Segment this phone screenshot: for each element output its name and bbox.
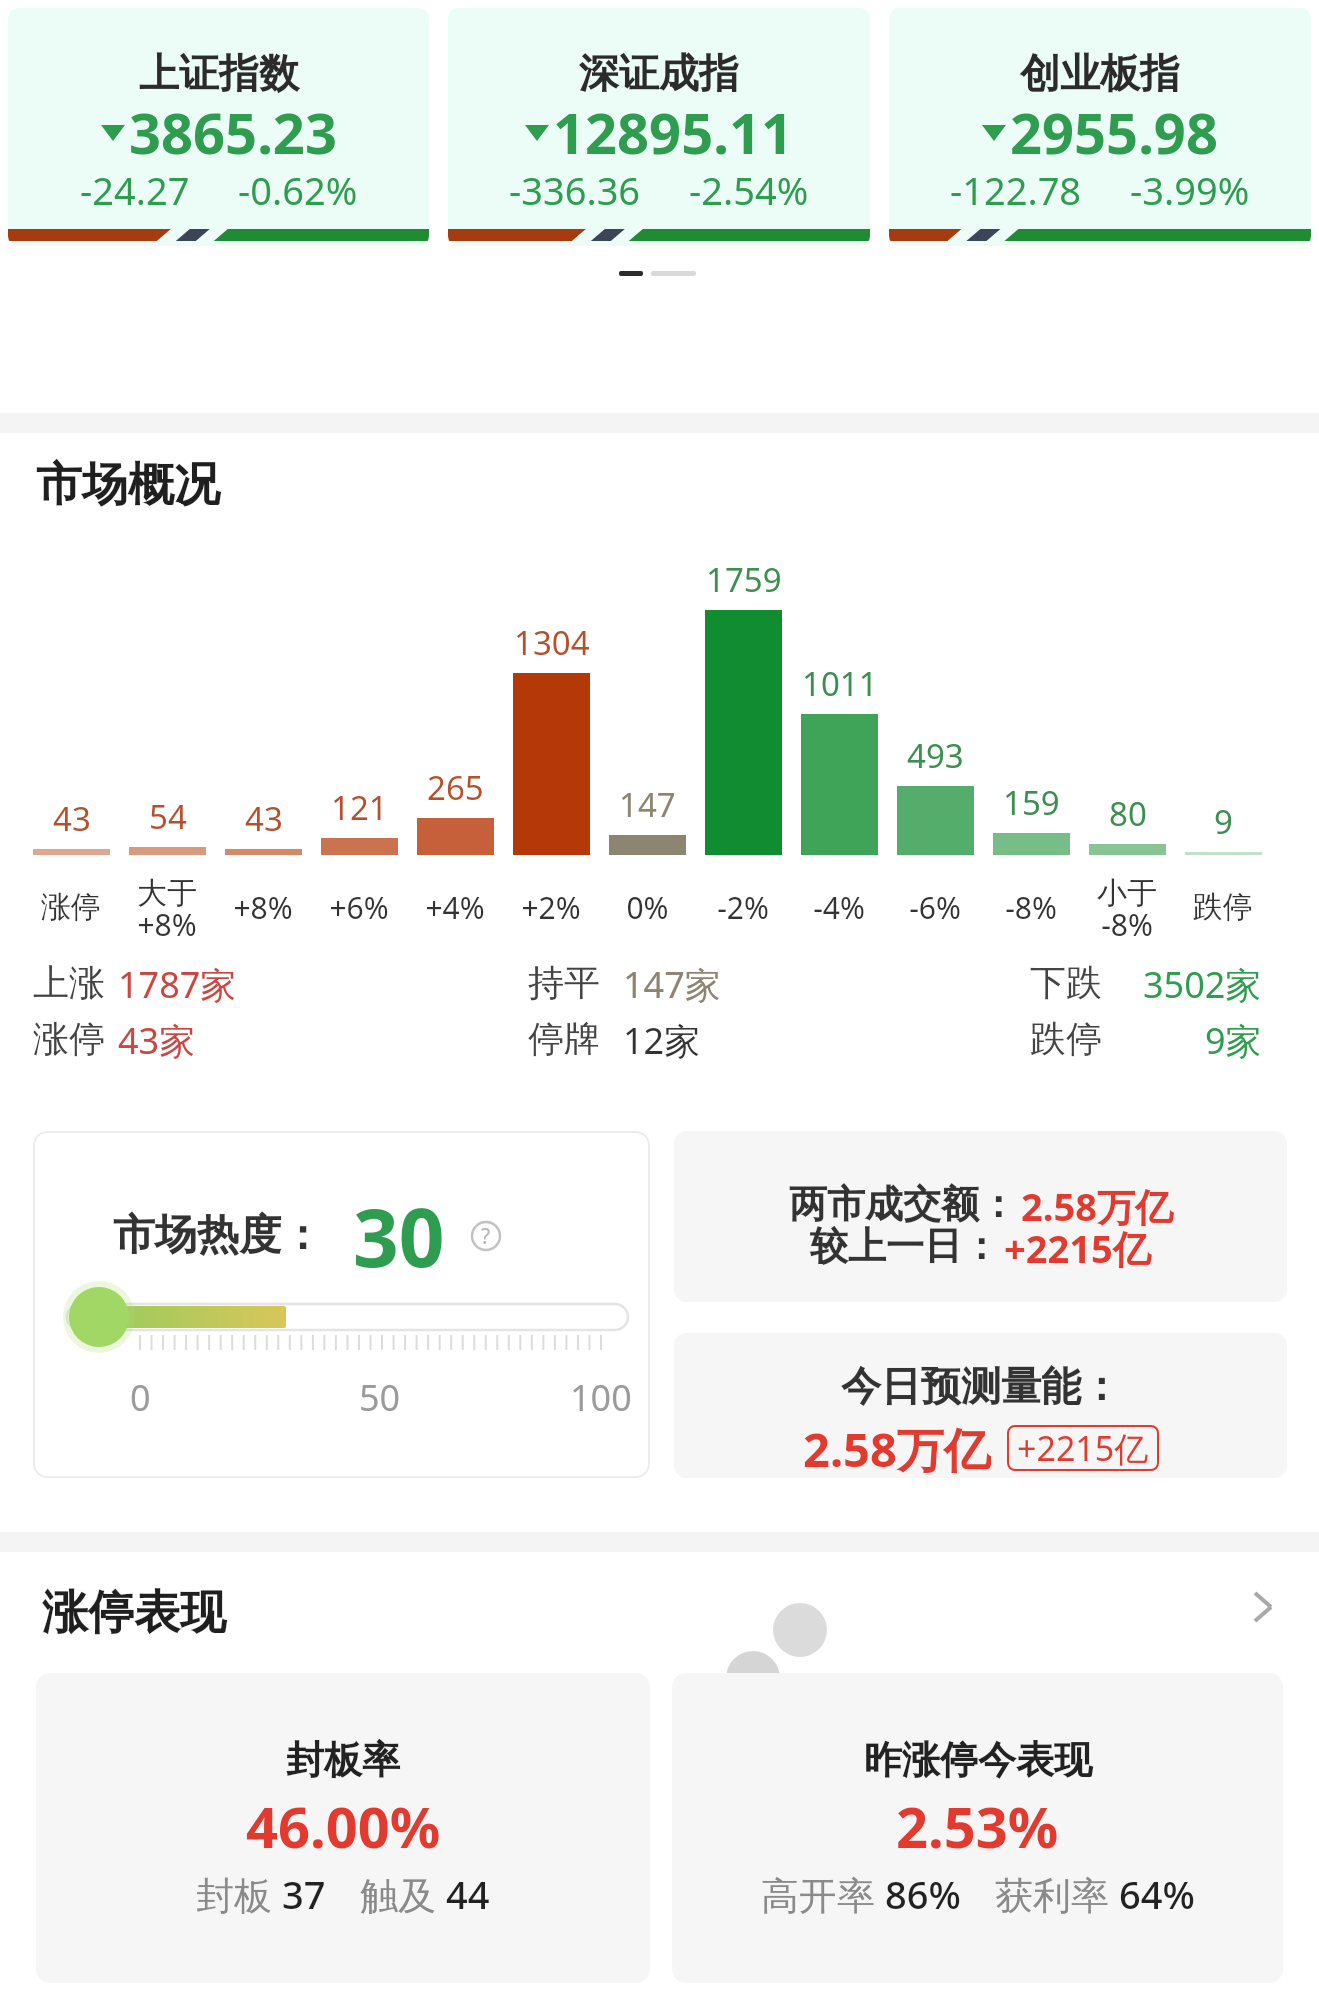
- staticText: 64%: [1119, 1868, 1195, 1920]
- staticText: 2955.98: [1010, 94, 1218, 170]
- staticText: 2.58万亿: [803, 1417, 991, 1478]
- staticText: 3865.23: [129, 94, 337, 170]
- staticText: 147家: [623, 960, 721, 1009]
- staticText: 封板: [196, 1868, 282, 1920]
- button[interactable]: 今日预测量能：: [674, 1333, 1287, 1478]
- staticText: 1787家: [118, 960, 237, 1009]
- staticText: 0: [130, 1373, 151, 1422]
- staticText: 43家: [118, 1016, 196, 1065]
- staticText: 上涨: [33, 960, 105, 1005]
- staticText: 创业板指: [1020, 48, 1180, 98]
- button[interactable]: 上证指数: [8, 8, 429, 246]
- staticText: 43: [53, 796, 91, 841]
- staticText: 深证成指: [579, 48, 739, 98]
- staticText: -122.78: [950, 164, 1082, 216]
- staticText: 跌停: [1030, 1016, 1102, 1061]
- button[interactable]: 市场热度：: [33, 1131, 650, 1478]
- staticText: 86%: [885, 1868, 961, 1920]
- button[interactable]: [1250, 1590, 1276, 1624]
- staticText: +6%: [329, 887, 389, 928]
- staticText: +2215亿: [1017, 1425, 1149, 1471]
- staticText: 493: [907, 733, 964, 778]
- button[interactable]: 封板率: [36, 1673, 650, 1983]
- staticText: 昨涨停今表现: [864, 1736, 1092, 1784]
- staticText: +2%: [521, 887, 581, 928]
- staticText: 121: [331, 785, 388, 830]
- staticText: 100: [570, 1373, 632, 1422]
- staticText: -2.54%: [689, 164, 809, 216]
- staticText: 持平: [528, 960, 600, 1005]
- staticText: 获利率: [995, 1868, 1119, 1920]
- staticText: 12家: [623, 1016, 701, 1065]
- staticText: 大于 +8%: [137, 874, 197, 940]
- staticText: 跌停: [1193, 888, 1253, 926]
- staticText: -336.36: [509, 164, 641, 216]
- button[interactable]: 创业板指: [889, 8, 1311, 246]
- staticText: 159: [1003, 780, 1060, 825]
- staticText: -8%: [1005, 887, 1057, 928]
- staticText: +4%: [425, 887, 485, 928]
- button[interactable]: 两市成交额：: [674, 1131, 1287, 1302]
- staticText: 30: [353, 1181, 445, 1290]
- staticText: 市场热度：: [113, 1209, 323, 1262]
- staticText: 265: [427, 765, 484, 810]
- staticText: 9: [1214, 799, 1233, 844]
- staticText: 涨停: [33, 1016, 105, 1061]
- staticText: -24.27: [80, 164, 190, 216]
- staticText: 封板率: [286, 1736, 400, 1784]
- staticText: 下跌: [1030, 960, 1102, 1005]
- staticText: 两市成交额：: [789, 1180, 1017, 1228]
- staticText: -4%: [813, 887, 865, 928]
- staticText: 46.00%: [246, 1788, 441, 1864]
- staticText: -2%: [717, 887, 769, 928]
- staticText: +8%: [233, 887, 293, 928]
- staticText: 2.58万亿: [1021, 1180, 1173, 1232]
- staticText: +2215亿: [1004, 1222, 1151, 1274]
- staticText: ?: [481, 1222, 491, 1251]
- staticText: 涨停表现: [42, 1584, 226, 1642]
- staticText: 43: [245, 796, 283, 841]
- staticText: -6%: [909, 887, 961, 928]
- staticText: 3502家: [1143, 960, 1262, 1009]
- button[interactable]: 昨涨停今表现: [672, 1673, 1283, 1983]
- button[interactable]: 深证成指: [448, 8, 870, 246]
- staticText: 2.53%: [896, 1788, 1059, 1864]
- staticText: 9家: [1205, 1016, 1262, 1065]
- staticText: 12895.11: [553, 94, 793, 170]
- staticText: 44: [446, 1868, 490, 1920]
- staticText: 小于 -8%: [1097, 874, 1157, 940]
- staticText: 涨停: [41, 888, 101, 926]
- staticText: 上证指数: [139, 48, 299, 98]
- staticText: 80: [1109, 791, 1147, 836]
- staticText: 高开率: [761, 1868, 885, 1920]
- staticText: 今日预测量能：: [841, 1361, 1121, 1411]
- staticText: -3.99%: [1130, 164, 1250, 216]
- staticText: 0%: [626, 887, 669, 928]
- staticText: -0.62%: [238, 164, 358, 216]
- staticText: 147: [619, 782, 676, 827]
- staticText: 停牌: [528, 1016, 600, 1061]
- staticText: 较上一日：: [810, 1222, 1000, 1270]
- staticText: 市场概况: [36, 456, 220, 514]
- staticText: 1304: [514, 620, 590, 665]
- staticText: 54: [149, 794, 187, 839]
- staticText: 1759: [706, 557, 782, 602]
- staticText: 37: [282, 1868, 326, 1920]
- staticText: 50: [359, 1373, 401, 1422]
- staticText: 1011: [802, 661, 878, 706]
- staticText: 触及: [360, 1868, 446, 1920]
